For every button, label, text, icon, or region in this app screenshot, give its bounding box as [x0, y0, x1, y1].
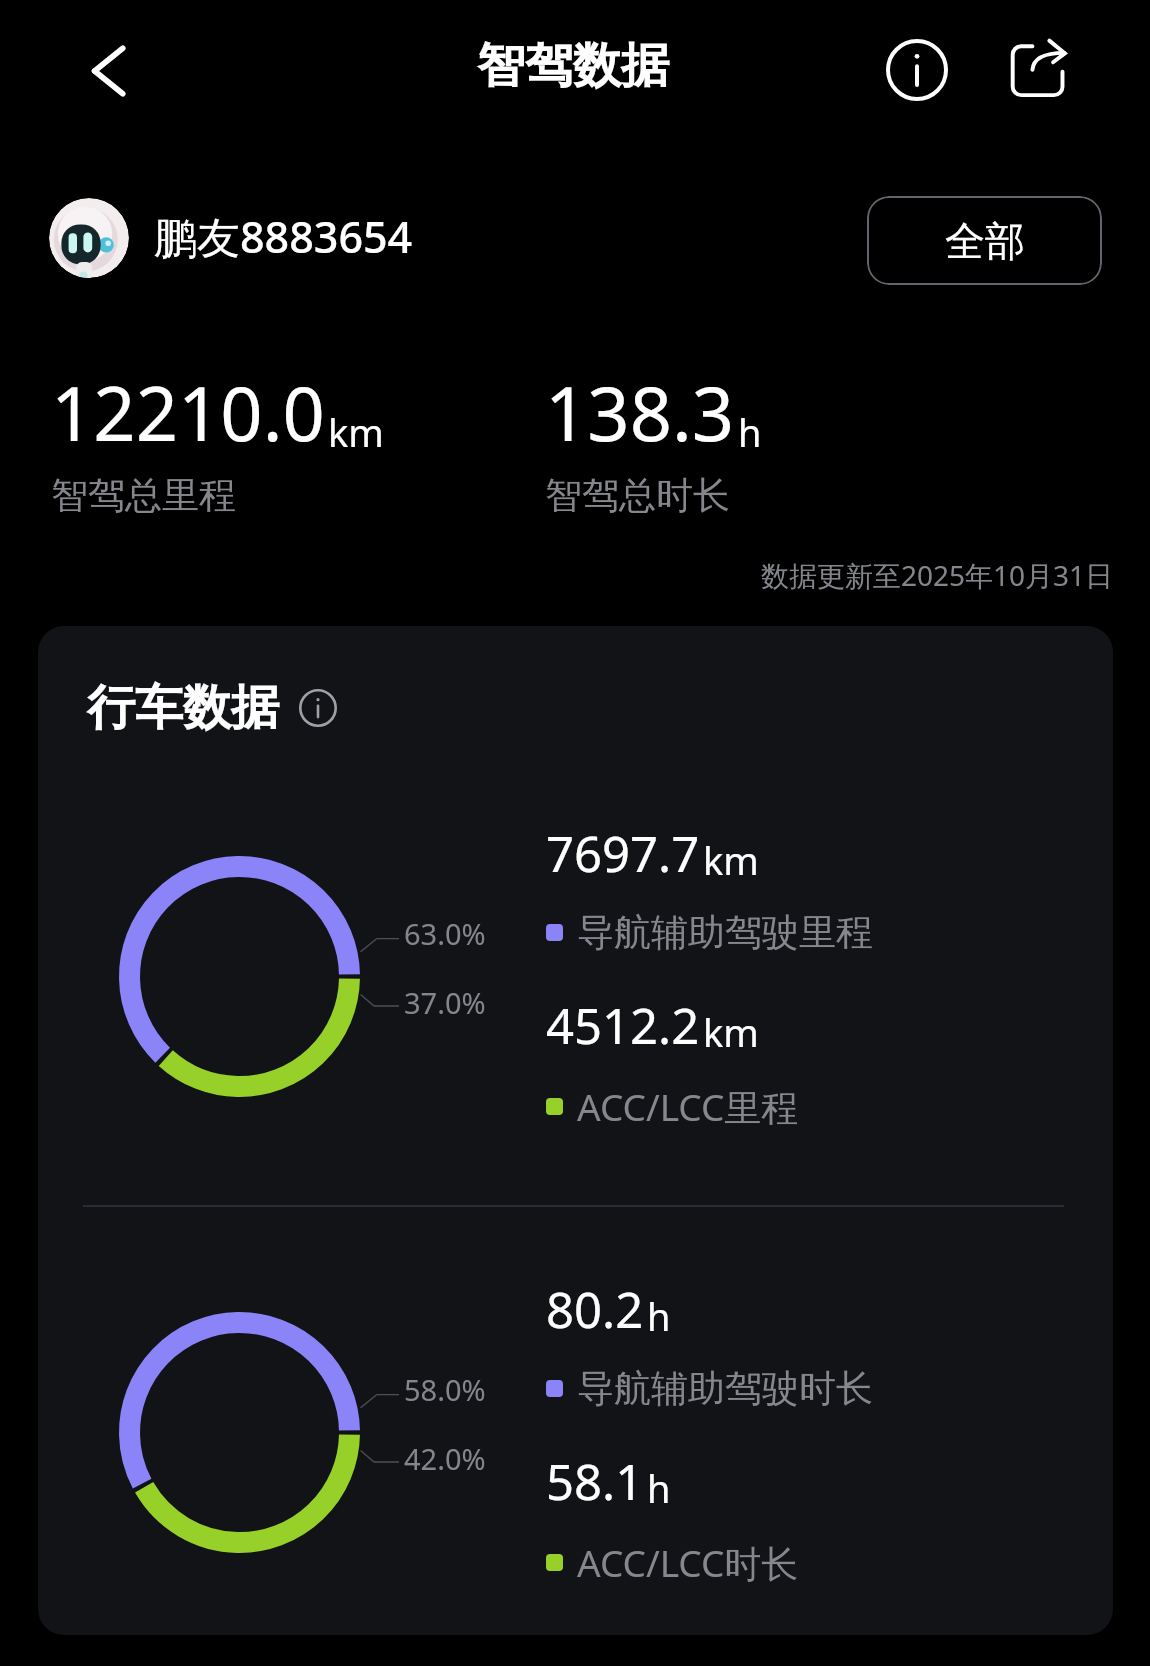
staticText: 智驾数据: [477, 36, 669, 96]
staticText: 全部: [945, 216, 1025, 266]
staticText: h: [738, 406, 762, 458]
staticText: 鹏友8883654: [154, 207, 413, 266]
button[interactable]: 鹏友8883654: [49, 195, 413, 281]
staticText: 4512.2: [546, 992, 700, 1059]
staticText: 80.2: [546, 1276, 644, 1343]
staticText: ACC/LCC时长: [577, 1537, 799, 1588]
staticText: 智驾总时长: [545, 472, 730, 519]
staticText: 数据更新至2025年10月31日: [761, 556, 1114, 594]
button[interactable]: Share: [995, 22, 1083, 110]
staticText: 42.0%: [404, 1439, 486, 1478]
staticText: 智驾总里程: [51, 472, 236, 519]
staticText: 58.1: [546, 1448, 644, 1515]
staticText: ACC/LCC里程: [577, 1081, 799, 1132]
button[interactable]: 全部: [867, 196, 1102, 285]
button[interactable]: Back: [63, 25, 155, 117]
staticText: h: [647, 1462, 671, 1514]
staticText: km: [703, 1006, 759, 1058]
staticText: 12210.0: [51, 362, 325, 463]
staticText: km: [328, 406, 384, 458]
staticText: 行车数据: [87, 678, 279, 738]
staticText: km: [703, 834, 759, 886]
staticText: h: [647, 1290, 671, 1342]
button[interactable]: Info: [873, 26, 961, 114]
staticText: 导航辅助驾驶里程: [577, 909, 873, 956]
staticText: 58.0%: [404, 1370, 486, 1409]
staticText: 7697.7: [546, 820, 700, 887]
staticText: 63.0%: [404, 914, 486, 953]
button[interactable]: Driving data info: [290, 680, 346, 736]
staticText: 37.0%: [404, 983, 486, 1022]
staticText: 导航辅助驾驶时长: [577, 1365, 873, 1412]
staticText: 138.3: [545, 362, 735, 463]
